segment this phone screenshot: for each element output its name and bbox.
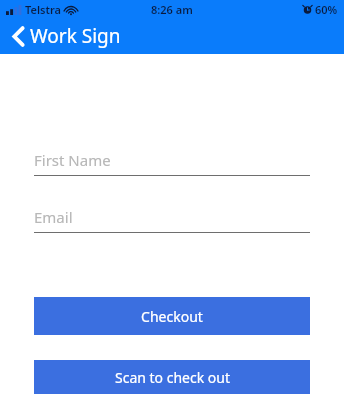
staticText: Telstra [25, 2, 61, 17]
staticText: Checkout [141, 307, 203, 326]
staticText: 8:26 am [151, 2, 193, 17]
button[interactable]: Email [34, 207, 310, 233]
staticText: First Name [34, 150, 111, 170]
staticText: 60% [315, 2, 338, 17]
staticText: Scan to check out [115, 368, 230, 387]
staticText: Work Sign [30, 23, 121, 49]
button[interactable]: Scan to check out [34, 360, 310, 394]
button[interactable]: Back [8, 20, 125, 52]
button[interactable]: Checkout [34, 297, 310, 335]
button[interactable]: First Name [34, 150, 310, 176]
staticText: Email [34, 207, 73, 227]
other: Back [12, 26, 25, 47]
